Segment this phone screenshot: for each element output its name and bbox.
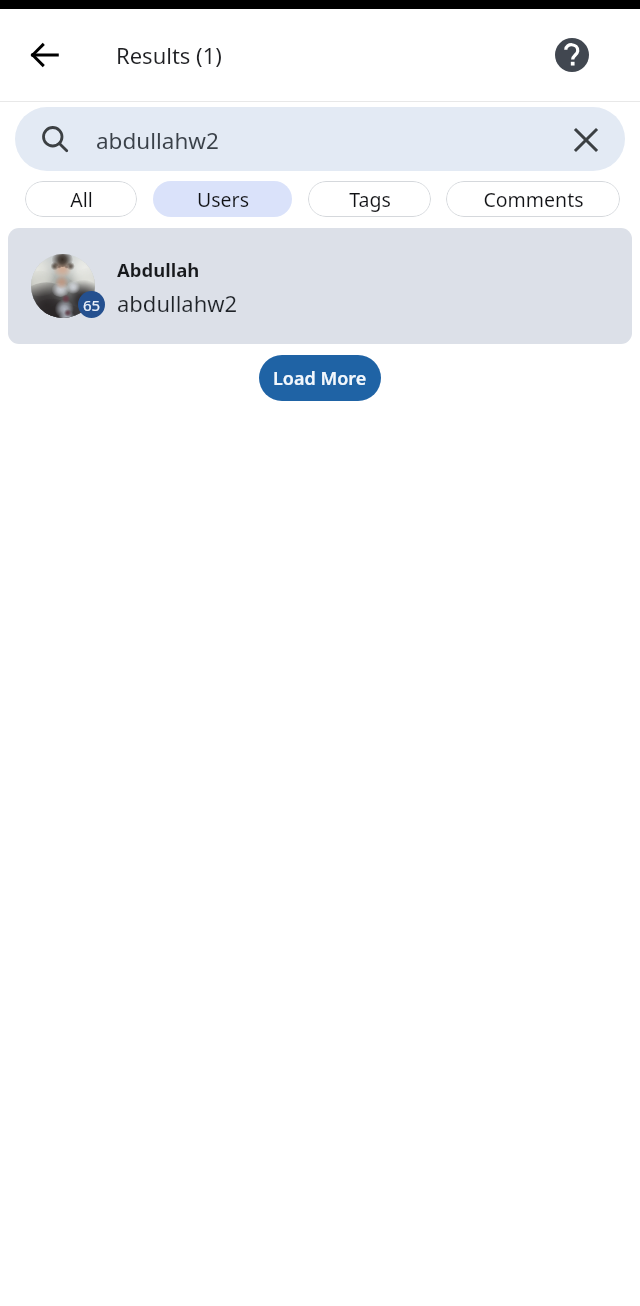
staticText: Tags — [349, 186, 391, 213]
button[interactable]: All — [25, 181, 137, 217]
button[interactable]: Tags — [308, 181, 431, 217]
staticText: Comments — [483, 186, 584, 213]
staticText: abdullahw2 — [96, 125, 219, 156]
staticText: Abdullah — [117, 257, 200, 282]
staticText: 65 — [83, 295, 101, 315]
staticText: Users — [197, 186, 249, 213]
button[interactable]: abdullahw2 — [15, 107, 625, 171]
button[interactable]: Help — [548, 31, 596, 79]
button[interactable]: 65 — [8, 228, 632, 344]
button[interactable]: Users — [153, 181, 292, 217]
button[interactable]: Load More — [259, 355, 381, 401]
staticText: Results (1) — [116, 40, 222, 70]
button[interactable]: Clear search — [564, 118, 608, 162]
staticText: All — [70, 186, 93, 213]
staticText: Load More — [273, 366, 367, 391]
button[interactable]: Back — [20, 30, 70, 80]
button[interactable]: Comments — [446, 181, 620, 217]
staticText: abdullahw2 — [117, 288, 238, 318]
